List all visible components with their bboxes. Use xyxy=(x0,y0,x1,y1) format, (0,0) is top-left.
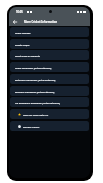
button[interactable]: Most Runs & Wickets xyxy=(10,50,89,60)
staticText: Most Runs & Wickets xyxy=(15,54,40,57)
button[interactable]: Points Table xyxy=(10,39,89,49)
staticText: 10:05 xyxy=(16,10,23,14)
button[interactable]: Like My App? Rate us xyxy=(10,109,89,119)
staticText: Batsmen Rankings (International) xyxy=(15,78,56,81)
staticText: Team Squads xyxy=(15,31,31,34)
staticText: Team Rankings (International) xyxy=(15,66,52,69)
staticText: Like My App? Rate us xyxy=(23,113,49,116)
staticText: All Rounders Rankings (International) xyxy=(15,101,60,104)
button[interactable]: All Rounders Rankings (International) xyxy=(10,97,89,107)
staticText: More Cricket Information xyxy=(24,20,58,24)
button[interactable]: Batsmen Rankings (International) xyxy=(10,74,89,84)
button[interactable]: Bowlers Rankings (International) xyxy=(10,86,89,96)
staticText: Bowlers Rankings (International) xyxy=(15,90,55,93)
staticText: Points Table xyxy=(15,43,30,46)
button[interactable]: Team Rankings (International) xyxy=(10,62,89,72)
staticText: Privacy Policy xyxy=(23,125,40,128)
button[interactable]: Privacy Policy xyxy=(10,121,89,131)
button[interactable]: Back xyxy=(11,18,18,25)
button[interactable]: Team Squads xyxy=(10,27,89,37)
